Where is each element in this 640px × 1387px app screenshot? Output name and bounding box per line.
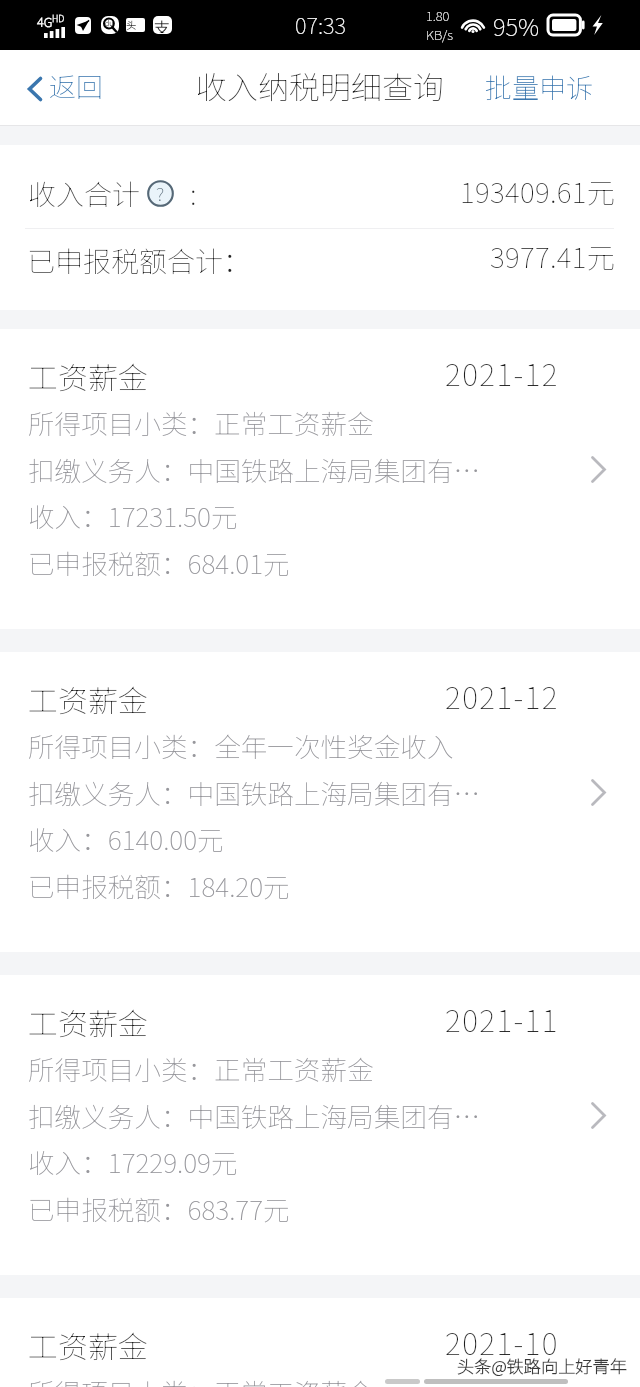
button[interactable]: 工资薪金 <box>0 1298 640 1387</box>
other: Back <box>28 77 42 101</box>
button[interactable]: 批量申诉 <box>465 57 640 120</box>
staticText: 扣缴义务人：中国铁路上海局集团有… <box>28 450 481 489</box>
staticText: ? <box>156 179 165 206</box>
button[interactable]: 工资薪金 <box>0 329 640 629</box>
staticText: 2021-12 <box>445 351 559 394</box>
staticText: 批量申诉 <box>485 67 593 106</box>
staticText: 已申报税额：184.20元 <box>28 866 290 905</box>
staticText: 头条 <box>126 17 145 31</box>
staticText: 支 <box>154 15 171 33</box>
staticText: 扣缴义务人：中国铁路上海局集团有… <box>28 1096 481 1135</box>
staticText: 2021-12 <box>445 674 559 717</box>
staticText: 扣缴义务人：中国铁路上海局集团有… <box>28 773 481 812</box>
staticText: HD <box>52 12 65 25</box>
staticText: 07:33 <box>295 8 346 40</box>
staticText: 3977.41元 <box>490 236 616 277</box>
staticText: 工资薪金 <box>28 1000 148 1043</box>
staticText: 收入：17229.09元 <box>28 1142 238 1181</box>
staticText: 收入：6140.00元 <box>28 819 224 858</box>
staticText: 工资薪金 <box>28 354 148 397</box>
staticText: 2021-11 <box>445 997 559 1040</box>
staticText: 工资薪金 <box>28 677 148 720</box>
staticText: 2021-10 <box>445 1320 559 1363</box>
staticText: 已申报税额：684.01元 <box>28 543 290 582</box>
staticText: 收入纳税明细查询 <box>196 63 444 108</box>
button[interactable]: Help <box>147 180 174 207</box>
staticText: 收入：17231.50元 <box>28 496 238 535</box>
staticText: : <box>190 173 197 214</box>
staticText: 4G <box>37 12 53 31</box>
staticText: KB/s <box>426 25 453 44</box>
staticText: 所得项目小类：正常工资薪金 <box>28 403 374 442</box>
staticText: 头条@铁路向上好青年 <box>457 1353 627 1378</box>
staticText: 所得项目小类：正常工资薪金 <box>28 1049 374 1088</box>
staticText: 已申报税额合计： <box>27 240 252 281</box>
staticText: 1.80 <box>426 6 450 25</box>
staticText: 已申报税额：683.77元 <box>28 1189 290 1228</box>
staticText: 所得项目小类：全年一次性奖金收入 <box>28 726 454 765</box>
staticText: 收入合计 <box>28 173 141 214</box>
staticText: 95% <box>493 8 540 43</box>
staticText: 所得项目小类：正常工资薪金 <box>28 1372 374 1387</box>
staticText: 返回 <box>49 66 103 105</box>
button[interactable]: 工资薪金 <box>0 975 640 1275</box>
staticText: 193409.61元 <box>460 171 616 212</box>
staticText: 工资薪金 <box>28 1323 148 1366</box>
button[interactable]: Back <box>0 57 121 120</box>
staticText: du <box>105 18 114 28</box>
button[interactable]: 工资薪金 <box>0 652 640 952</box>
